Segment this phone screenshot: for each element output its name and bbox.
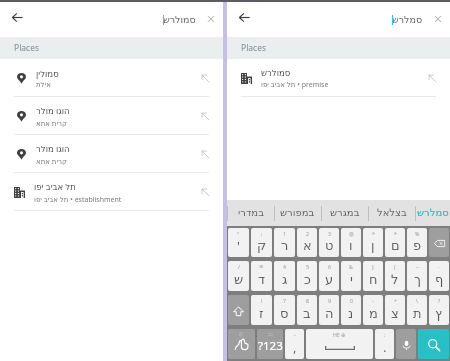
button[interactable] <box>429 228 449 257</box>
button[interactable]: Clear <box>429 10 447 28</box>
button[interactable]: 5 <box>297 261 317 291</box>
staticText: - <box>372 297 374 304</box>
button[interactable] <box>418 329 449 359</box>
button[interactable]: במפורש <box>274 200 321 226</box>
staticText: צ <box>391 306 399 321</box>
button[interactable]: - <box>285 329 304 359</box>
button[interactable]: במגרש <box>321 200 368 226</box>
button[interactable] <box>396 329 416 359</box>
staticText: ב <box>303 306 311 321</box>
button[interactable]: Back <box>4 5 31 32</box>
staticText: בצלאל <box>377 207 407 219</box>
staticText: , <box>293 338 297 356</box>
button[interactable]: ▭ <box>257 329 283 359</box>
button[interactable]: הוגו מולר <box>0 97 223 135</box>
staticText: 8 <box>306 297 309 304</box>
button[interactable]: · <box>429 261 449 291</box>
staticText: ר <box>281 238 289 253</box>
button[interactable]: סמלרש <box>415 200 450 226</box>
staticText: ע <box>325 272 334 287</box>
staticText: ן <box>371 238 375 253</box>
staticText: סמולרש <box>261 68 291 78</box>
staticText: סמולין <box>36 69 59 79</box>
button[interactable]: - <box>363 295 383 325</box>
button[interactable]: Use suggestion <box>198 71 212 85</box>
button[interactable]: : <box>375 329 394 359</box>
button[interactable]: 0 <box>341 295 361 325</box>
button[interactable]: / <box>228 261 249 291</box>
button[interactable]: ~ <box>407 261 427 291</box>
button[interactable]: תל אביב יפו <box>0 173 223 211</box>
staticText: & <box>349 263 353 270</box>
staticText: ~ <box>416 263 419 270</box>
button[interactable]: 9 <box>319 295 339 325</box>
staticText: 2 <box>306 230 309 237</box>
staticText: תל אביב יפו • premise <box>261 80 329 90</box>
button[interactable]: Back <box>231 5 258 32</box>
staticText: ו <box>349 238 353 253</box>
button[interactable]: * <box>385 228 405 257</box>
staticText: % <box>415 230 420 237</box>
button[interactable]: Clear <box>202 10 220 28</box>
staticText: + <box>394 297 397 304</box>
staticText: אילת <box>36 81 51 89</box>
button[interactable]: 4 <box>274 261 295 291</box>
staticText: \ <box>416 297 418 304</box>
button[interactable]: סמולרש <box>227 59 450 97</box>
button[interactable]: 1 <box>274 228 295 257</box>
staticText: ▭ <box>268 331 273 337</box>
button[interactable]: % <box>407 228 427 257</box>
staticText: פ <box>413 238 422 253</box>
button[interactable]: ° <box>228 228 249 257</box>
button[interactable]: ! <box>251 295 272 325</box>
button[interactable]: בצלאל <box>368 200 415 226</box>
staticText: ( <box>394 263 396 270</box>
button[interactable]: Use suggestion <box>198 147 212 161</box>
staticText: ?123 <box>258 338 283 354</box>
staticText: ז <box>259 306 264 321</box>
staticText: ם <box>391 238 400 253</box>
staticText: ך <box>414 272 421 287</box>
button[interactable]: 8 <box>297 295 317 325</box>
button[interactable]: Use suggestion <box>198 109 212 123</box>
button[interactable]: ? <box>429 295 449 325</box>
staticText: ת <box>413 306 422 321</box>
button[interactable] <box>228 295 249 325</box>
button[interactable]: ; <box>251 228 272 257</box>
button[interactable]: הוגו מולר <box>0 135 223 173</box>
button[interactable]: HE ⊕ <box>306 329 373 359</box>
staticText: תל אביב יפו • establishment <box>34 195 122 205</box>
button[interactable]: ( <box>385 261 405 291</box>
button[interactable]: Use suggestion <box>425 71 439 85</box>
staticText: - <box>294 331 296 338</box>
staticText: 0 <box>350 297 353 304</box>
staticText: הוגו מולר <box>36 105 70 117</box>
staticText: · <box>438 263 440 270</box>
button[interactable]: * <box>363 228 383 257</box>
button[interactable]: ≡ <box>251 261 272 291</box>
staticText: Places <box>241 42 267 54</box>
button[interactable]: + <box>385 295 405 325</box>
button[interactable]: Use suggestion <box>198 185 212 199</box>
button[interactable]: 7 <box>274 295 295 325</box>
staticText: ש <box>234 272 244 287</box>
button[interactable]: ) <box>363 261 383 291</box>
staticText: 3 <box>328 230 331 237</box>
button[interactable]: @ <box>341 228 361 257</box>
staticText: © <box>239 331 244 338</box>
button[interactable]: סמולין <box>0 59 223 97</box>
staticText: HE ⊕ <box>333 331 346 338</box>
staticText: במגרש <box>330 207 360 219</box>
staticText: : <box>384 331 386 338</box>
staticText: א <box>303 238 312 253</box>
button[interactable]: & <box>341 261 361 291</box>
button[interactable]: \ <box>407 295 427 325</box>
button[interactable]: © <box>228 329 255 359</box>
button[interactable]: 3 <box>319 228 339 257</box>
staticText: ) <box>372 263 374 270</box>
button[interactable]: במדרי <box>227 200 274 226</box>
staticText: ד <box>258 272 266 287</box>
button[interactable]: 2 <box>297 228 317 257</box>
staticText: כ <box>304 272 311 287</box>
button[interactable]: 6 <box>319 261 339 291</box>
